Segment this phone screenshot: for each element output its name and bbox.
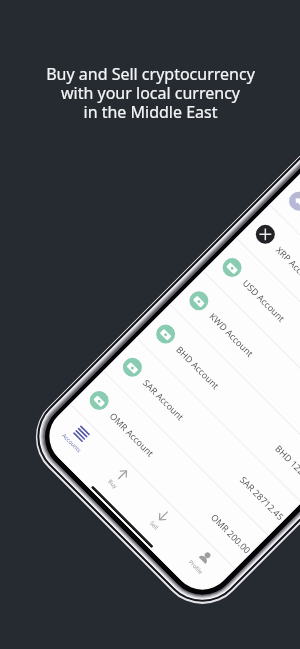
staticText: SAR Account: [141, 376, 187, 422]
button[interactable]: OMR Account: [69, 371, 268, 569]
button[interactable]: XRP Account: [236, 205, 300, 403]
button[interactable]: BHD Account: [136, 304, 300, 503]
button[interactable]: [269, 171, 300, 370]
button[interactable]: SAR Account: [103, 338, 300, 536]
button[interactable]: Accounts: [48, 408, 107, 466]
button[interactable]: Buy: [89, 449, 148, 507]
button[interactable]: KWD Account: [169, 271, 300, 470]
staticText: BHD Account: [174, 343, 222, 391]
staticText: BHD 1220.50: [273, 442, 300, 490]
staticText: OMR Account: [108, 410, 157, 459]
button[interactable]: USD Account: [202, 238, 300, 437]
staticText: Accounts: [60, 432, 83, 454]
staticText: Profile: [187, 558, 205, 576]
staticText: Buy and Sell cryptocurrency with your lo…: [46, 63, 255, 123]
staticText: USD Account: [241, 277, 288, 324]
button[interactable]: Sell: [130, 490, 190, 549]
staticText: KWD Account: [207, 310, 257, 359]
staticText: SAR 28712.45: [238, 473, 287, 523]
staticText: XRP Account: [274, 244, 300, 290]
button[interactable]: Profile: [172, 531, 231, 591]
staticText: Sell: [148, 519, 161, 532]
staticText: Buy: [106, 478, 119, 490]
staticText: OMR 200.00: [209, 511, 254, 556]
